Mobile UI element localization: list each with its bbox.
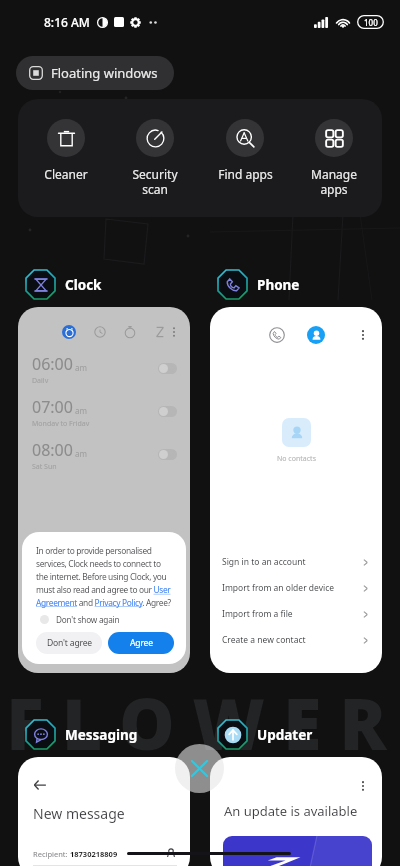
button[interactable]: Don't agree bbox=[36, 632, 102, 654]
button[interactable]: 07:00 bbox=[32, 396, 177, 426]
button[interactable]: Messaging bbox=[25, 719, 138, 750]
staticText: 06:00 bbox=[32, 353, 73, 375]
staticText: Clock bbox=[65, 276, 102, 294]
button[interactable]: 08:00 bbox=[32, 439, 177, 469]
staticText: No contacts bbox=[277, 454, 316, 464]
staticText: New message bbox=[33, 804, 125, 823]
staticText: Import from a file bbox=[222, 608, 293, 620]
button[interactable]: No contacts bbox=[210, 307, 382, 673]
staticText: am bbox=[75, 405, 87, 416]
button[interactable]: Import from a file bbox=[210, 601, 382, 627]
staticText: Floating windows bbox=[51, 64, 158, 82]
staticText: Phone bbox=[257, 276, 300, 294]
staticText: Messaging bbox=[65, 726, 138, 744]
staticText: Import from an older device bbox=[222, 582, 335, 594]
staticText: In order to provide personalised service… bbox=[36, 545, 174, 608]
button[interactable]: Floating windows bbox=[16, 56, 174, 90]
button[interactable]: Import from an older device bbox=[210, 575, 382, 601]
button[interactable]: Close all bbox=[175, 744, 224, 793]
button[interactable]: 06:00 bbox=[32, 353, 177, 383]
staticText: Updater bbox=[257, 726, 313, 744]
button[interactable]: Agree bbox=[108, 632, 174, 654]
staticText: 8:16 AM bbox=[44, 14, 90, 30]
staticText: FLOWER bbox=[6, 675, 400, 770]
staticText: Daily bbox=[32, 376, 49, 383]
staticText: An update is available bbox=[224, 802, 358, 820]
button[interactable]: Manage apps bbox=[293, 99, 375, 217]
button[interactable]: Clock bbox=[25, 269, 102, 300]
staticText: 18730218809 bbox=[70, 849, 118, 859]
staticText: Sat Sun bbox=[32, 462, 57, 469]
button[interactable]: Cleaner bbox=[25, 99, 107, 217]
button[interactable]: Updater bbox=[217, 719, 313, 750]
button[interactable]: Don't show again bbox=[36, 614, 120, 625]
staticText: Manage apps bbox=[311, 166, 357, 197]
staticText: Find apps bbox=[218, 166, 273, 182]
button[interactable]: Sign in to an account bbox=[210, 549, 382, 575]
staticText: Monday to Friday bbox=[32, 419, 90, 426]
staticText: am bbox=[75, 362, 87, 373]
staticText: Agree bbox=[130, 637, 153, 649]
button[interactable]: New message bbox=[18, 757, 190, 866]
staticText: 08:00 bbox=[32, 439, 73, 461]
staticText: am bbox=[75, 448, 87, 459]
button[interactable]: 06:00 bbox=[18, 307, 190, 673]
staticText: 100 bbox=[364, 17, 378, 28]
button[interactable]: Find apps bbox=[204, 99, 286, 217]
button[interactable]: Create a new contact bbox=[210, 627, 382, 653]
staticText: Sign in to an account bbox=[222, 556, 306, 568]
staticText: Recipient: bbox=[33, 849, 70, 859]
staticText: Create a new contact bbox=[222, 634, 306, 646]
button[interactable]: Security scan bbox=[114, 99, 196, 217]
staticText: Don't agree bbox=[47, 637, 92, 649]
button[interactable]: An update is available bbox=[210, 757, 382, 866]
button[interactable]: Phone bbox=[217, 269, 300, 300]
staticText: Cleaner bbox=[44, 166, 88, 182]
staticText: Security scan bbox=[132, 166, 178, 197]
staticText: 07:00 bbox=[32, 396, 73, 418]
staticText: Don't show again bbox=[56, 614, 120, 625]
